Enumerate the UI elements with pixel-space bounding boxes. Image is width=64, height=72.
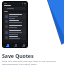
button[interactable]: More options — [4, 19, 26, 24]
button[interactable] — [4, 7, 26, 10]
button[interactable]: Saved — [11, 43, 19, 47]
button[interactable]: More options — [4, 24, 26, 29]
button[interactable]: More options — [4, 29, 26, 35]
staticText: Keep your favourite lines and notes in o… — [2, 60, 57, 66]
button[interactable]: More options — [4, 35, 26, 40]
staticText: Save Quotes — [2, 52, 34, 59]
button[interactable]: More options — [4, 13, 26, 19]
button[interactable]: Profile — [19, 43, 27, 47]
button[interactable]: Home — [3, 43, 11, 47]
